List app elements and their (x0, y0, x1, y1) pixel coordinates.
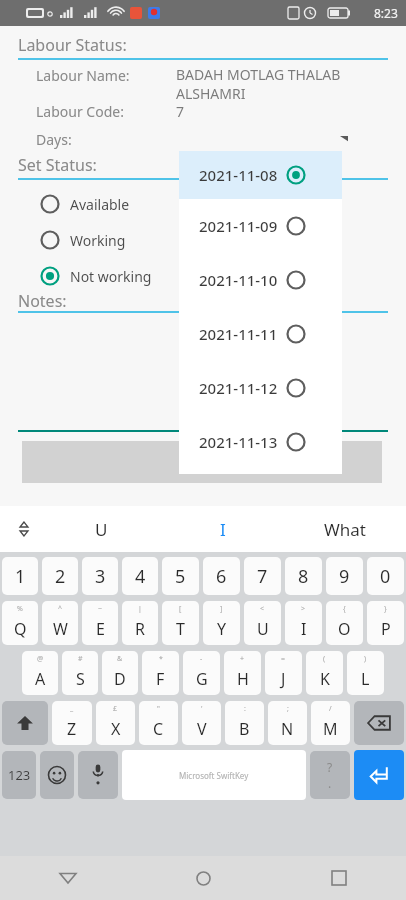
button[interactable]: ; (268, 701, 307, 745)
button[interactable]: Recent apps (271, 856, 406, 900)
button[interactable]: Symbols (310, 751, 350, 799)
staticText: 2021-11-12 (199, 378, 278, 398)
button[interactable]: 1 (2, 557, 38, 595)
button[interactable]: Shift (2, 701, 48, 745)
staticText: [ (179, 604, 182, 614)
button[interactable]: 2021-11-13 (179, 415, 342, 469)
button[interactable]: What (284, 506, 406, 552)
staticText: Days: (36, 130, 72, 149)
button[interactable]: } (367, 601, 404, 645)
button[interactable]: U (40, 506, 162, 552)
button[interactable]: " (139, 701, 178, 745)
button[interactable]: SAVE (22, 441, 382, 483)
staticText: ) (364, 654, 367, 664)
button[interactable]: 7 (244, 557, 281, 595)
button[interactable]: % (2, 601, 38, 645)
button[interactable]: 2021-11-12 (179, 361, 342, 415)
staticText: Q (14, 618, 27, 640)
staticText: 2021-11-11 (199, 324, 278, 344)
button[interactable]: 4 (122, 557, 158, 595)
button[interactable]: Select day (336, 130, 352, 146)
button[interactable]: ' (182, 701, 221, 745)
staticText: Z (67, 718, 77, 740)
button[interactable]: 2021-11-11 (179, 307, 342, 361)
button[interactable]: < (244, 601, 281, 645)
button[interactable]: { (326, 601, 363, 645)
button[interactable]: ~ (82, 601, 118, 645)
button[interactable]: ] (203, 601, 240, 645)
button[interactable]: : (225, 701, 264, 745)
button[interactable]: 3 (82, 557, 118, 595)
button[interactable]: Available (14, 188, 214, 220)
staticText: / (329, 704, 332, 714)
staticText: R (135, 618, 145, 640)
staticText: U (257, 618, 269, 640)
button[interactable]: 5 (162, 557, 199, 595)
button[interactable]: 2 (42, 557, 78, 595)
button[interactable]: £ (96, 701, 135, 745)
button[interactable]: Numbers (2, 751, 36, 799)
staticText: C (153, 718, 164, 740)
staticText: Notes: (18, 290, 67, 312)
button[interactable]: [ (162, 601, 199, 645)
button[interactable]: 2021-11-09 (179, 199, 342, 253)
staticText: > (301, 604, 306, 614)
button[interactable]: _ (52, 701, 92, 745)
staticText: 4 (135, 564, 146, 589)
button[interactable]: ( (306, 651, 343, 695)
staticText: # (78, 654, 83, 664)
button[interactable]: I (162, 506, 284, 552)
staticText: ~ (98, 604, 103, 614)
staticText: : (244, 704, 246, 714)
staticText: E (96, 618, 105, 640)
button[interactable]: Back (0, 856, 136, 900)
button[interactable]: # (62, 651, 98, 695)
button[interactable]: 9 (326, 557, 363, 595)
staticText: } (384, 604, 387, 614)
button[interactable]: - (183, 651, 220, 695)
staticText: ? (327, 759, 333, 775)
staticText: < (260, 604, 265, 614)
staticText: B (239, 718, 250, 740)
button[interactable]: | (122, 601, 158, 645)
button[interactable]: Expand suggestions (12, 517, 36, 541)
staticText: BADAH MOTLAG THALAB ALSHAMRI (176, 65, 341, 103)
staticText: ( (323, 654, 326, 664)
staticText: % (17, 604, 23, 614)
button[interactable]: Enter (354, 750, 404, 800)
button[interactable]: 6 (203, 557, 240, 595)
button[interactable]: Space (122, 750, 306, 800)
button[interactable]: Not working (14, 260, 214, 292)
staticText: ' (201, 704, 203, 714)
button[interactable]: > (285, 601, 322, 645)
staticText: P (381, 618, 391, 640)
staticText: M (323, 718, 338, 740)
staticText: ] (220, 604, 223, 614)
staticText: Available (70, 195, 130, 214)
button[interactable]: 2021-11-10 (179, 253, 342, 307)
staticText: 6 (216, 564, 227, 589)
button[interactable]: @ (22, 651, 58, 695)
button[interactable]: ^ (42, 601, 78, 645)
staticText: 2021-11-08 (199, 165, 278, 185)
staticText: 9 (339, 564, 350, 589)
button[interactable]: ) (347, 651, 384, 695)
button[interactable]: Working (14, 224, 214, 256)
button[interactable]: * (142, 651, 179, 695)
button[interactable]: 2021-11-08 (179, 151, 342, 199)
staticText: 2 (55, 564, 66, 589)
button[interactable]: 0 (367, 557, 404, 595)
staticText: I (220, 518, 226, 541)
staticText: D (114, 668, 126, 690)
button[interactable]: / (311, 701, 350, 745)
staticText: Set Status: (18, 154, 97, 176)
button[interactable]: Home (136, 856, 271, 900)
button[interactable]: Backspace (354, 701, 404, 745)
button[interactable]: + (224, 651, 261, 695)
button[interactable]: Emoji (40, 751, 74, 799)
button[interactable]: 8 (285, 557, 322, 595)
button[interactable]: & (102, 651, 138, 695)
button[interactable]: Voice input (78, 751, 118, 799)
button[interactable]: = (265, 651, 302, 695)
